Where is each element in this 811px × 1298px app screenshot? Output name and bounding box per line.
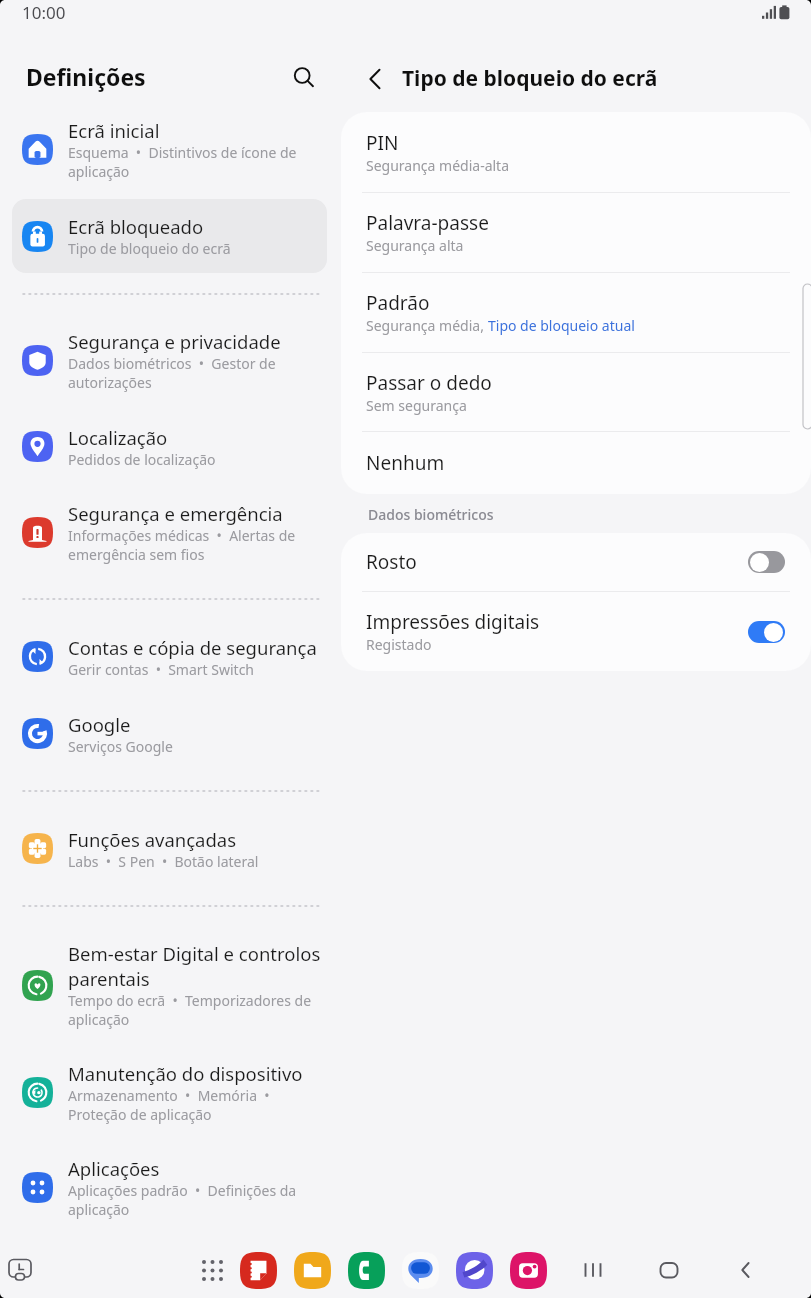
staticText: Palavra-passe [366, 210, 489, 236]
staticText: Tempo do ecrã • Temporizadores de aplica… [68, 991, 324, 1029]
button[interactable]: Contas e cópia de segurança [0, 618, 341, 695]
button[interactable]: Pesquisar [284, 59, 324, 99]
staticText: Manutenção do dispositivo [68, 1061, 303, 1086]
staticText: Rosto [366, 549, 417, 575]
button[interactable]: PIN [341, 112, 811, 192]
staticText: Armazenamento • Memória • Proteção de ap… [68, 1086, 324, 1124]
button[interactable]: Google [0, 695, 341, 772]
staticText: Labs • S Pen • Botão lateral [68, 852, 259, 871]
staticText: Serviços Google [68, 737, 173, 756]
staticText: Esquema • Distintivos de ícone de aplica… [68, 143, 324, 181]
button[interactable]: Segurança e emergência [0, 485, 341, 580]
staticText: 10:00 [22, 1, 66, 24]
button[interactable]: Segurança e privacidade [0, 313, 341, 408]
staticText: Aplicações padrão • Definições da aplica… [68, 1181, 324, 1219]
staticText: Bem-estar Digital e controlos parentais [68, 941, 324, 991]
staticText: Definições [26, 61, 146, 92]
button[interactable]: Manutenção do dispositivo [0, 1045, 341, 1140]
button[interactable]: Câmara [510, 1252, 547, 1289]
button[interactable]: Telefone [348, 1252, 385, 1289]
button[interactable]: Ecrã inicial [0, 102, 341, 197]
button[interactable]: Ecrã bloqueado [12, 199, 327, 273]
button[interactable]: Padrão [341, 273, 811, 352]
button[interactable]: Os Meus Ficheiros [294, 1252, 331, 1289]
button[interactable]: Passar o dedo [341, 353, 811, 431]
staticText: Segurança alta [366, 236, 464, 255]
button[interactable]: Todas as aplicações [195, 1253, 229, 1287]
button[interactable] [748, 551, 785, 573]
staticText: Segurança média, [366, 316, 488, 335]
staticText: Sem segurança [366, 396, 467, 415]
button[interactable]: Rosto [341, 533, 811, 591]
button[interactable]: Palavra-passe [341, 193, 811, 272]
staticText: Contas e cópia de segurança [68, 635, 317, 660]
button[interactable]: Localização [0, 408, 341, 485]
staticText: Impressões digitais [366, 609, 540, 635]
staticText: Dados biométricos • Gestor de autorizaçõ… [68, 354, 324, 392]
staticText: Pedidos de localização [68, 450, 216, 469]
staticText: Segurança e privacidade [68, 329, 281, 354]
button[interactable]: Google Mensagens [402, 1252, 439, 1289]
staticText: Tipo de bloqueio do ecrã [402, 64, 658, 93]
staticText: Segurança e emergência [68, 501, 283, 526]
staticText: Tipo de bloqueio atual [488, 316, 635, 335]
button[interactable]: Recentes [575, 1252, 611, 1288]
staticText: Google [68, 712, 131, 737]
staticText: Segurança média-alta [366, 156, 510, 175]
button[interactable] [748, 621, 785, 643]
staticText: Registado [366, 635, 432, 654]
button[interactable]: Nenhum [341, 432, 811, 494]
staticText: Ecrã inicial [68, 118, 160, 143]
staticText: Ecrã bloqueado [68, 214, 204, 239]
staticText: Gerir contas • Smart Switch [68, 660, 255, 679]
button[interactable]: Aplicações [0, 1140, 341, 1235]
staticText: Passar o dedo [366, 370, 492, 396]
button[interactable]: Bem-estar Digital e controlos parentais [0, 925, 341, 1045]
staticText: Aplicações [68, 1156, 160, 1181]
staticText: PIN [366, 130, 399, 156]
button[interactable]: Samsung Notes [240, 1252, 277, 1289]
button[interactable]: Internet [456, 1252, 493, 1289]
staticText: Informações médicas • Alertas de emergên… [68, 526, 324, 564]
staticText: Funções avançadas [68, 827, 237, 852]
staticText: Localização [68, 425, 168, 450]
button[interactable]: Voltar [728, 1252, 764, 1288]
staticText: Tipo de bloqueio do ecrã [68, 239, 231, 258]
staticText: Padrão [366, 290, 430, 316]
button[interactable]: Voltar [358, 60, 396, 98]
staticText: Dados biométricos [368, 505, 494, 524]
staticText: Nenhum [366, 450, 445, 476]
button[interactable]: Impressões digitais [341, 592, 811, 671]
button[interactable]: Funções avançadas [0, 810, 341, 887]
button[interactable]: Captura de ecrã [3, 1253, 37, 1287]
button[interactable]: Início [651, 1252, 687, 1288]
